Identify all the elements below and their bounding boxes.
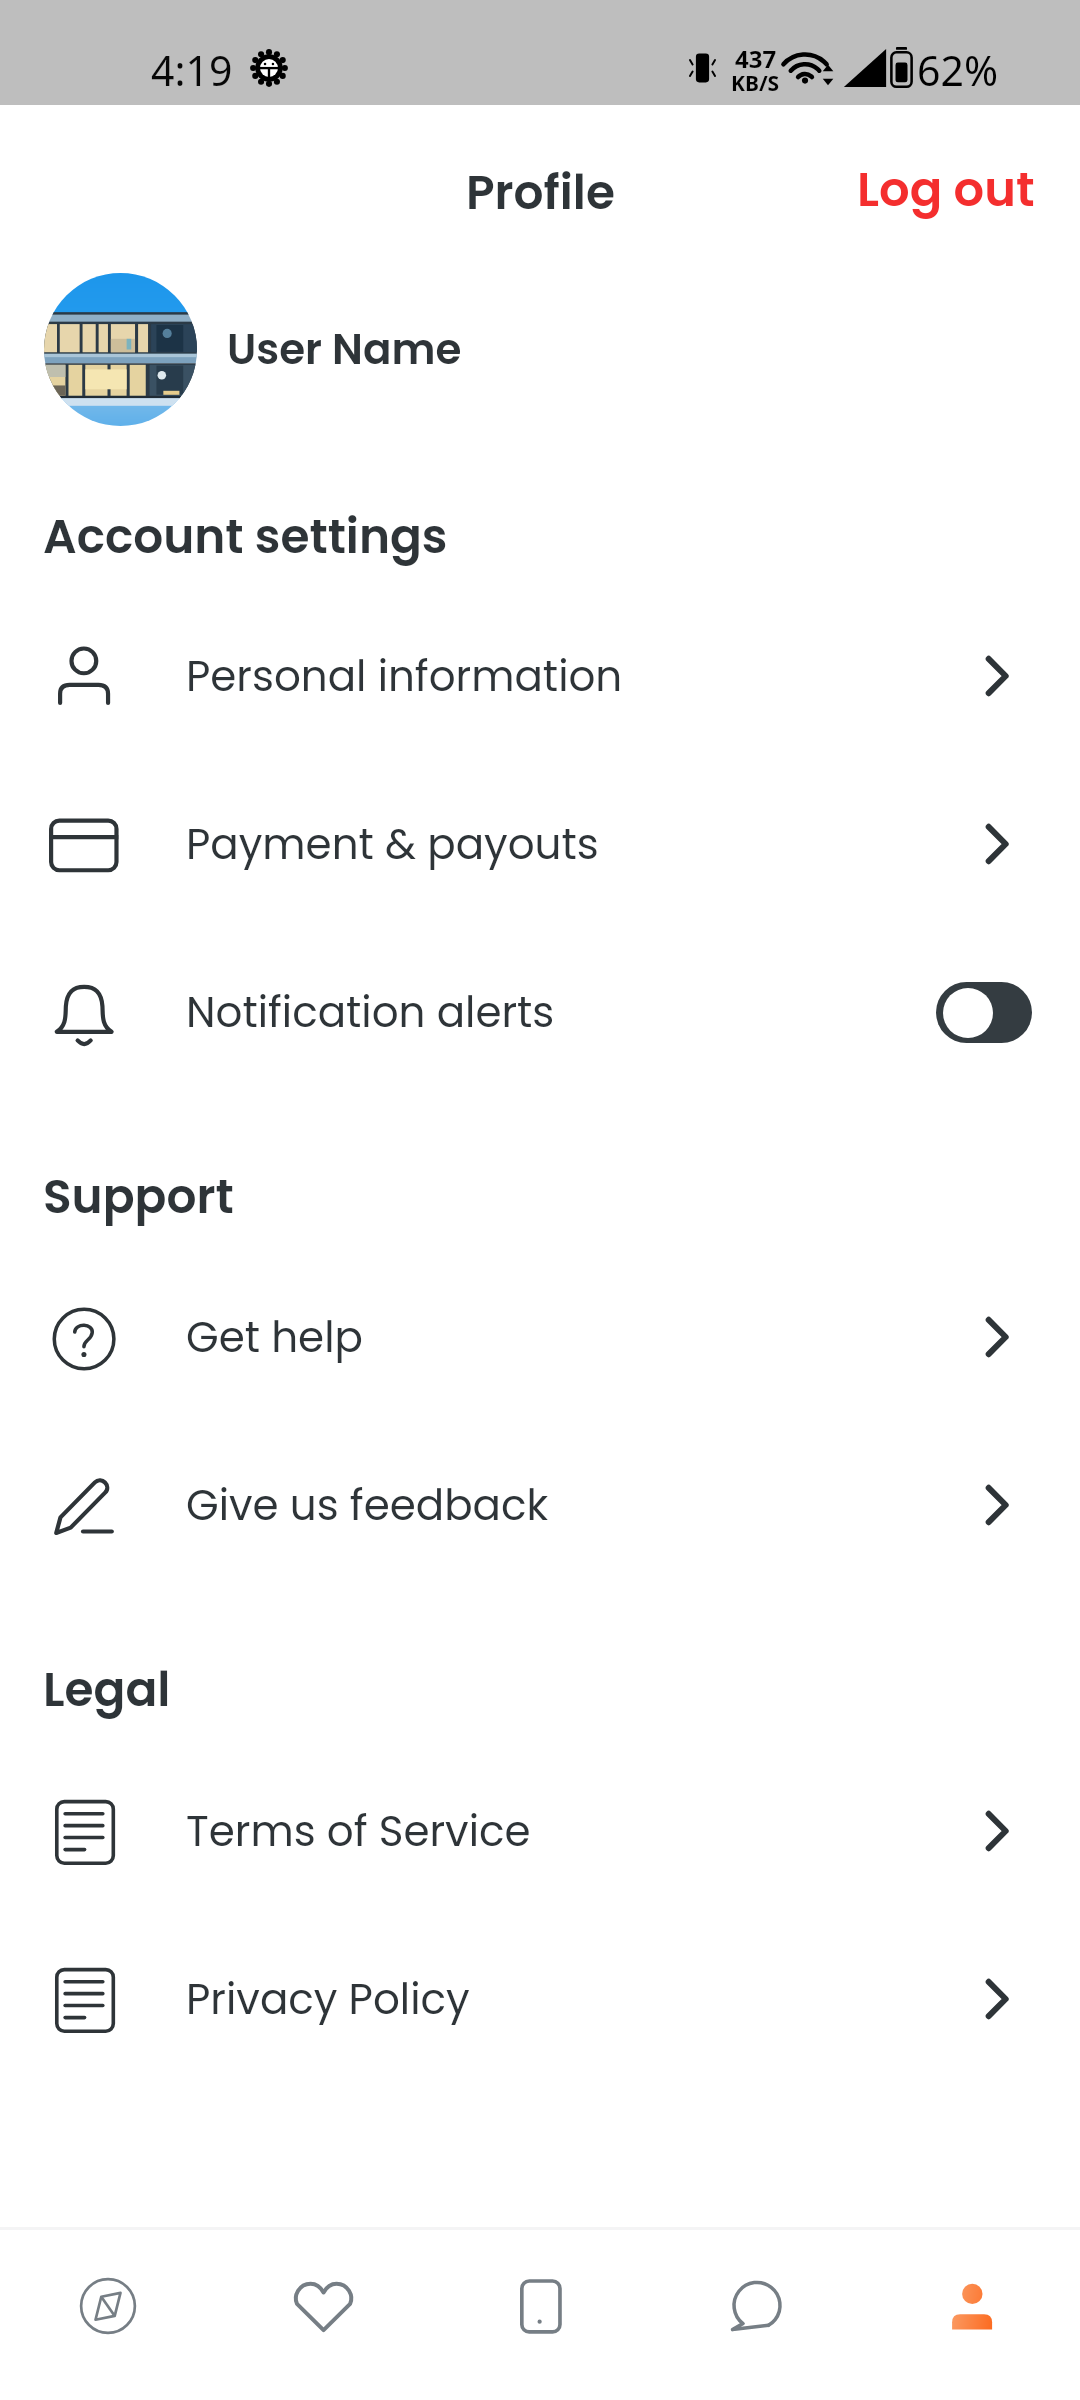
button[interactable]: User Name	[0, 256, 1080, 442]
staticText: Notification alerts	[186, 983, 555, 1042]
staticText: KB/S	[731, 69, 780, 98]
button[interactable]: Get help	[0, 1253, 1080, 1421]
button[interactable]: Give us feedback	[0, 1421, 1080, 1589]
button[interactable]: Personal information	[0, 592, 1080, 760]
button[interactable]: Notification alerts	[0, 928, 1080, 1096]
staticText: Get help	[186, 1308, 363, 1367]
staticText: User Name	[227, 320, 462, 379]
staticText: 62%	[917, 42, 998, 98]
staticText: Log out	[857, 156, 1035, 223]
staticText: Give us feedback	[186, 1476, 549, 1535]
button[interactable]: Explore	[0, 2230, 216, 2400]
staticText: 437	[735, 42, 777, 75]
staticText: Legal	[43, 1657, 171, 1723]
button[interactable]: Payment & payouts	[0, 760, 1080, 928]
staticText: Support	[43, 1164, 234, 1230]
button[interactable]: Log out	[827, 142, 1080, 237]
staticText: Terms of Service	[186, 1802, 531, 1861]
button[interactable]: Inbox	[648, 2230, 864, 2400]
button[interactable]: Profile	[864, 2230, 1080, 2400]
button[interactable]: Terms of Service	[0, 1747, 1080, 1915]
staticText: 4:19	[151, 42, 233, 98]
button[interactable]: Wishlists	[216, 2230, 432, 2400]
staticText: Profile	[466, 160, 615, 226]
button[interactable]: Trips	[432, 2230, 648, 2400]
button[interactable]: Privacy Policy	[0, 1915, 1080, 2083]
staticText: Privacy Policy	[186, 1970, 470, 2029]
button[interactable]	[936, 982, 1032, 1043]
staticText: Payment & payouts	[186, 815, 599, 874]
staticText: Personal information	[186, 647, 623, 706]
staticText: Account settings	[43, 504, 448, 570]
